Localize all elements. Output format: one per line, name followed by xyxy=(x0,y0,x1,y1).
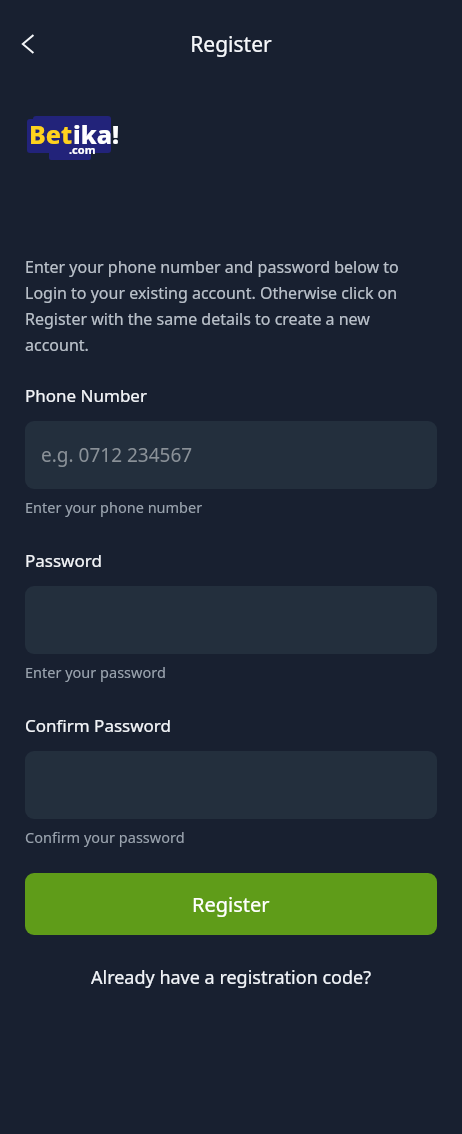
staticText: Register xyxy=(192,891,270,918)
button[interactable]: Already have a registration code? xyxy=(25,955,437,999)
staticText: Phone Number xyxy=(25,384,147,407)
staticText: Already have a registration code? xyxy=(91,965,372,990)
button[interactable]: Phone Number input xyxy=(25,421,437,489)
button[interactable]: Back xyxy=(4,20,52,68)
staticText: Password xyxy=(25,549,102,572)
staticText: Confirm your password xyxy=(25,827,185,847)
staticText: e.g. 0712 234567 xyxy=(41,442,193,468)
button[interactable]: Register xyxy=(25,873,437,935)
staticText: Confirm Password xyxy=(25,714,171,737)
staticText: Enter your phone number xyxy=(25,497,203,517)
staticText: Register xyxy=(190,30,272,59)
staticText: Enter your password xyxy=(25,662,166,682)
staticText: Bet xyxy=(29,117,73,151)
staticText: .com xyxy=(69,142,96,157)
staticText: ika! xyxy=(73,117,120,151)
staticText: Enter your phone number and password bel… xyxy=(25,256,437,356)
